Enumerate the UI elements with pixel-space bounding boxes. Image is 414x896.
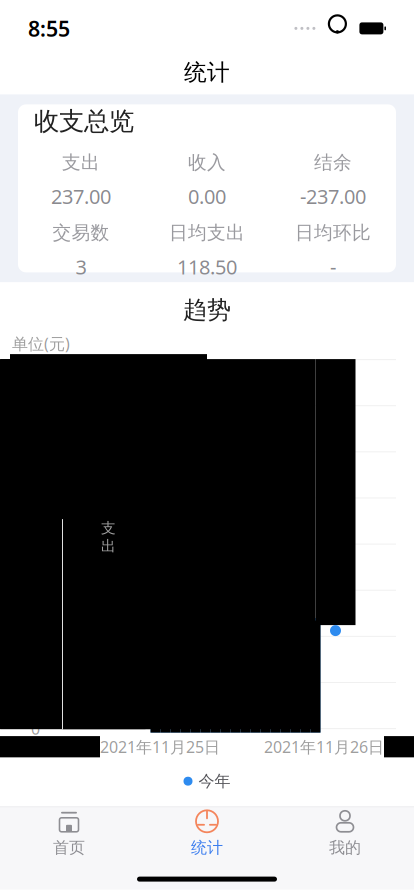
button[interactable]: 首页	[0, 803, 138, 861]
staticText: 237.00	[51, 183, 111, 209]
staticText: 日均环比	[295, 221, 371, 244]
staticText: 趋势	[183, 295, 231, 325]
button[interactable]: 我的	[276, 803, 414, 861]
staticText: 2021年11月25日	[100, 736, 220, 757]
staticText: 支	[101, 519, 116, 537]
staticText: 首页	[53, 838, 85, 857]
staticText: 日均支出	[169, 221, 245, 244]
button[interactable]: 统计	[138, 803, 276, 861]
staticText: 结余	[314, 151, 352, 174]
staticText: 出	[101, 537, 116, 555]
staticText: 今年	[198, 771, 230, 791]
staticText: 我的	[329, 838, 361, 857]
staticText: 0.00	[188, 183, 226, 209]
staticText: 收入	[188, 151, 226, 174]
staticText: 118.50	[177, 253, 237, 280]
staticText: 3	[75, 253, 86, 280]
staticText: 统计	[184, 58, 230, 86]
staticText: -237.00	[300, 183, 366, 209]
staticText: 支出	[62, 151, 100, 174]
staticText: 交易数	[52, 221, 109, 244]
staticText: 0	[31, 718, 40, 739]
staticText: 统计	[191, 838, 223, 857]
staticText: 2021年11月26日	[264, 736, 384, 757]
staticText: 8:55	[28, 14, 70, 42]
staticText: -	[330, 253, 336, 280]
staticText: 单位(元)	[12, 333, 70, 354]
staticText: 收支总览	[34, 106, 134, 137]
